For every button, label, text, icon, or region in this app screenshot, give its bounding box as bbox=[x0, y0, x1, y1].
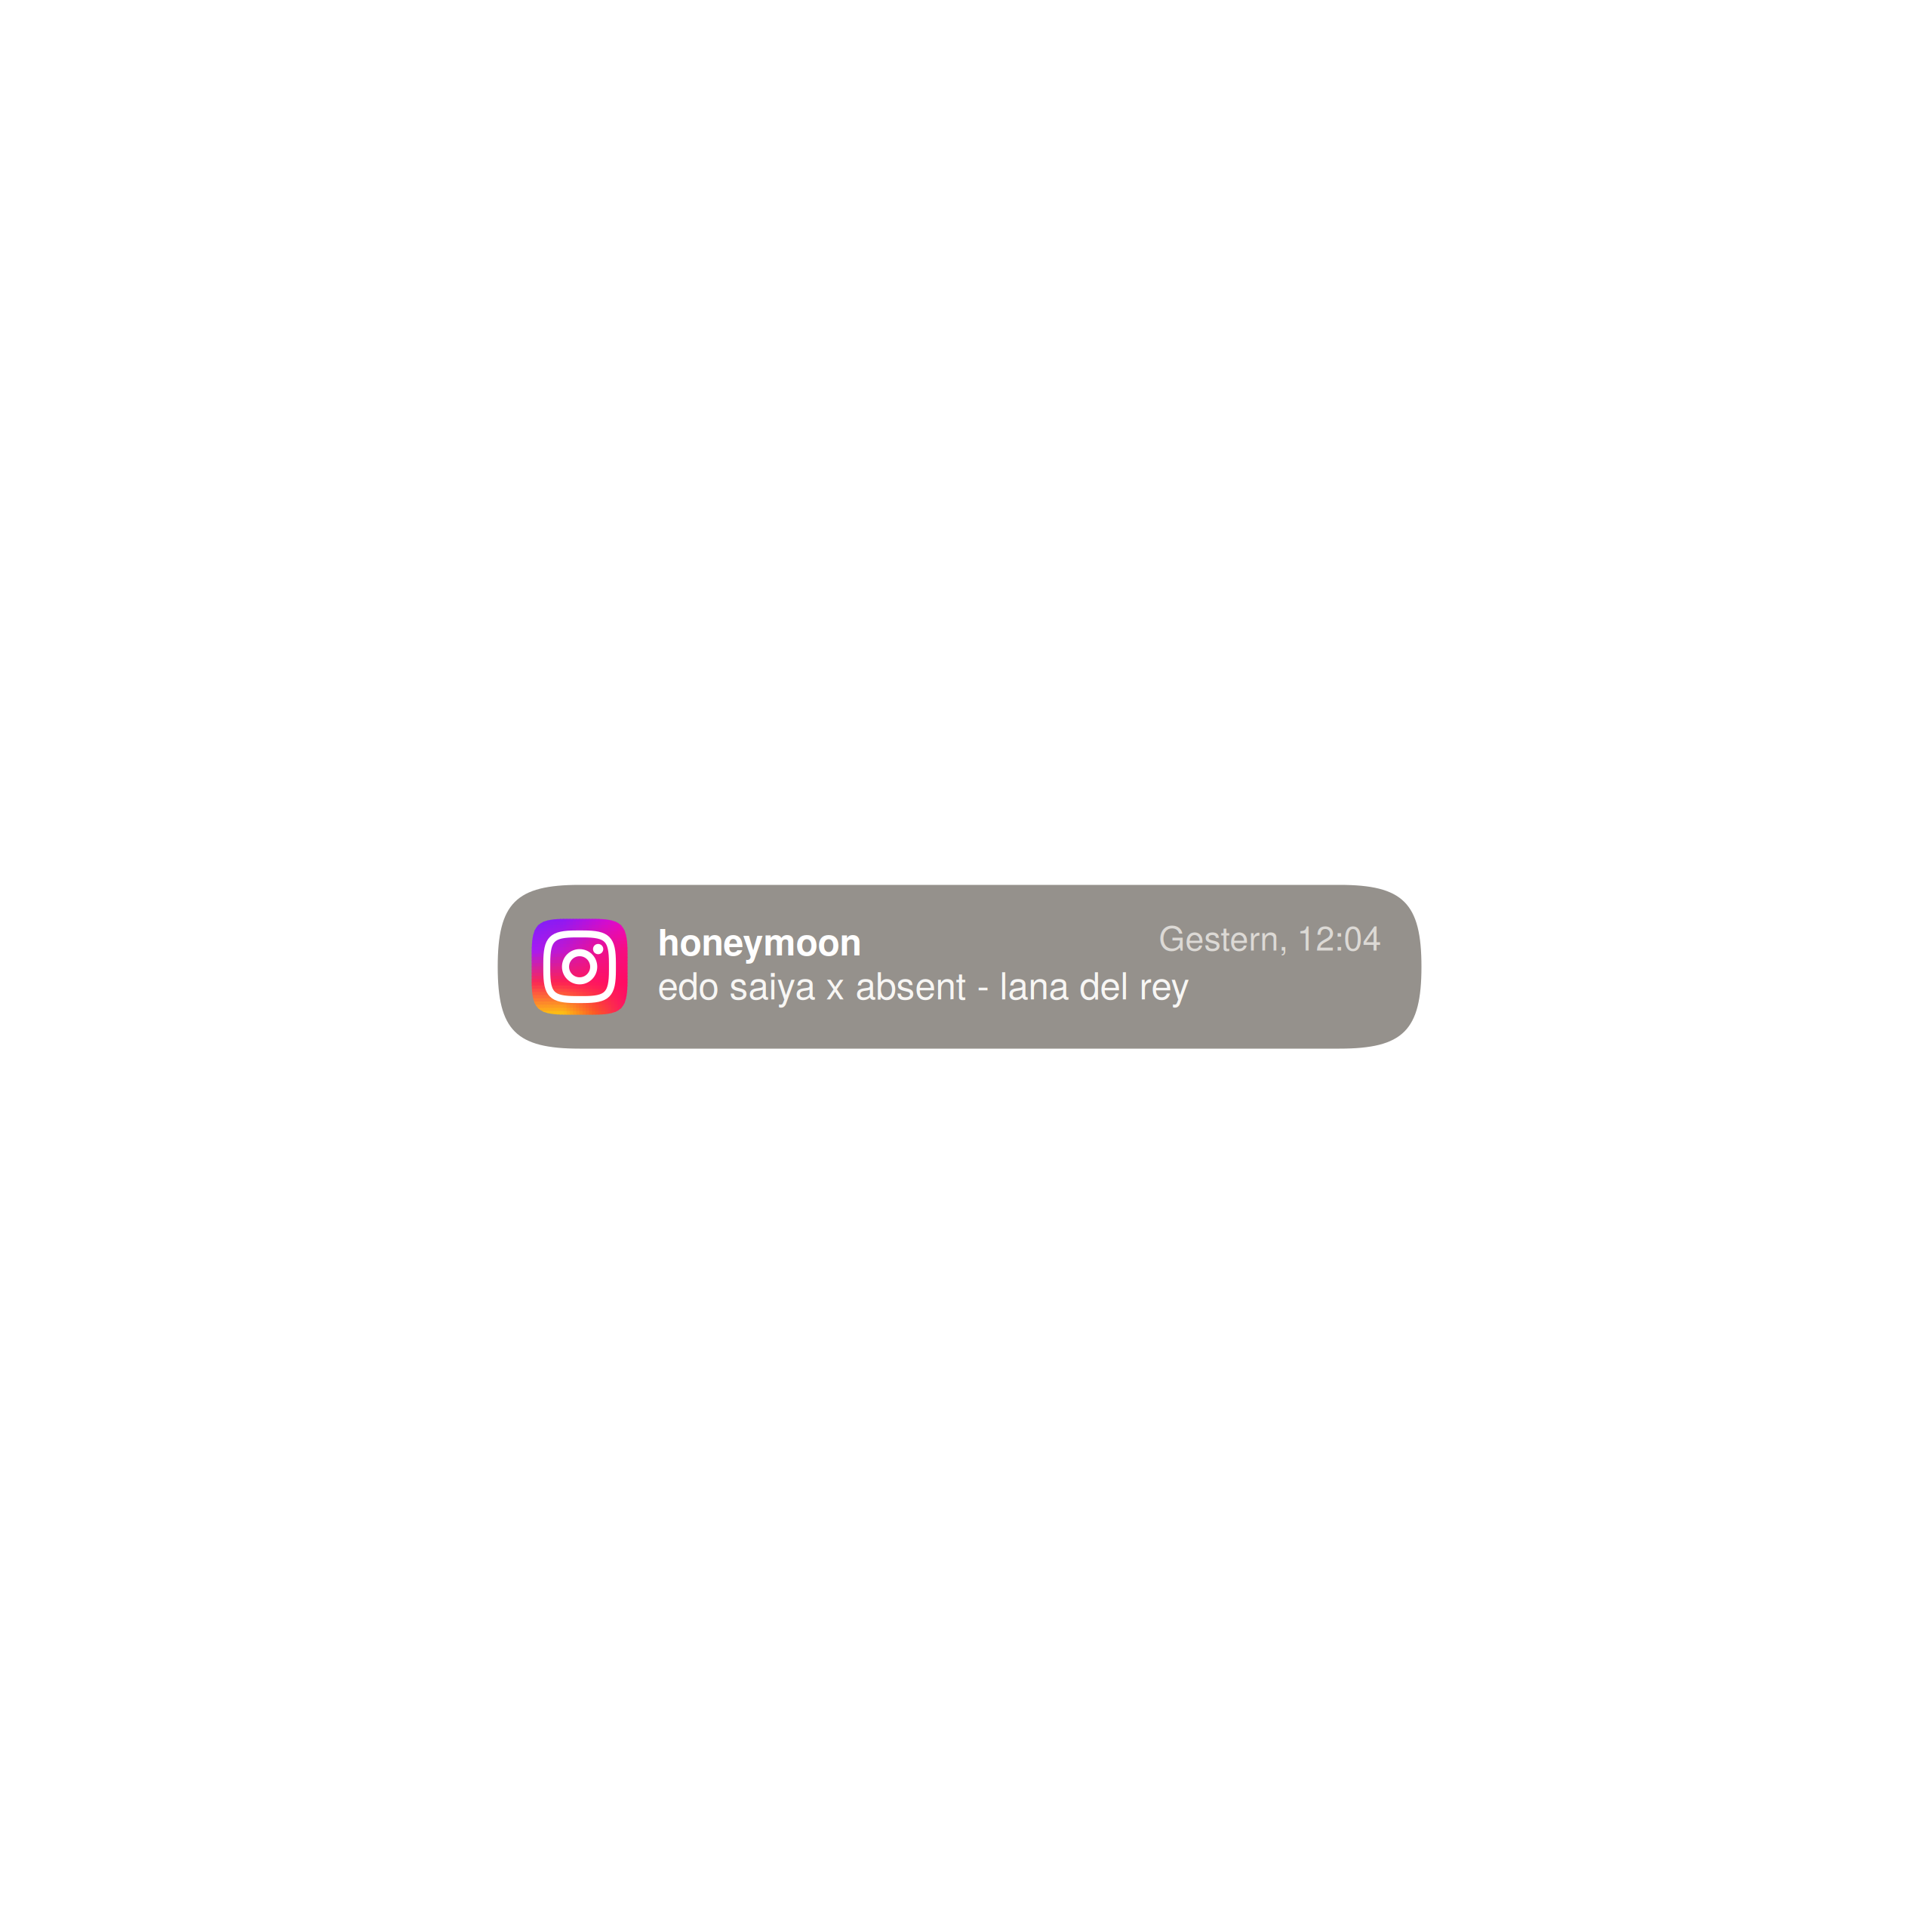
staticText: Gestern, 12:04 bbox=[1159, 912, 1381, 960]
button[interactable]: Instagram notification from honeymoon bbox=[498, 885, 1421, 1049]
staticText: edo saiya x absent - lana del rey bbox=[658, 957, 1190, 1010]
staticText: honeymoon bbox=[658, 915, 861, 967]
